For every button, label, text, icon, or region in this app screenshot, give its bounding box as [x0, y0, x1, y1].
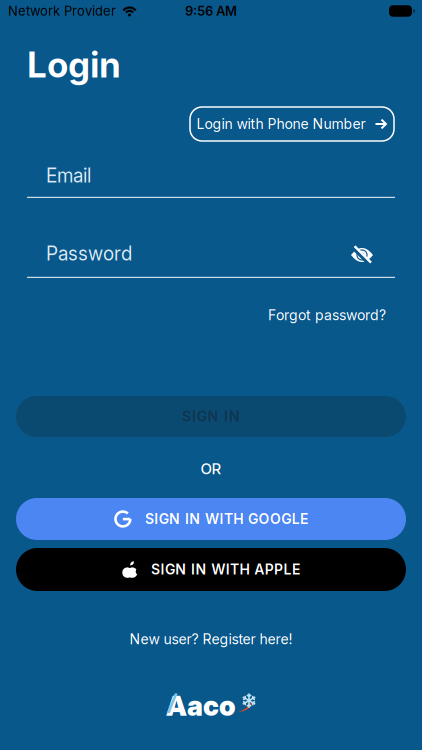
staticText: SIGN IN WITH APPLE [151, 561, 300, 578]
staticText: 9:56 AM [185, 3, 237, 19]
staticText: SIGN IN WITH GOOGLE [145, 511, 308, 527]
staticText: New user? Register here! [129, 631, 292, 647]
staticText: SIGN IN [182, 408, 240, 425]
staticText: Aaco [166, 690, 236, 722]
button[interactable]: SIGN IN WITH GOOGLE [16, 498, 406, 540]
staticText: OR [200, 460, 221, 478]
button[interactable]: SIGN IN WITH APPLE [16, 548, 406, 591]
staticText: Email [46, 164, 91, 187]
button[interactable]: Login with Phone Number [190, 107, 394, 141]
button[interactable]: New user? Register here! [129, 631, 292, 647]
staticText: Password [46, 242, 132, 265]
staticText: Network Provider [8, 3, 116, 19]
button[interactable]: Password [27, 242, 395, 278]
staticText: Forgot password? [268, 307, 386, 323]
staticText: Login [27, 44, 121, 85]
button[interactable]: Email [27, 164, 395, 198]
staticText: Login with Phone Number [196, 116, 365, 132]
button[interactable]: SIGN IN [16, 396, 406, 437]
button[interactable]: Forgot password? [268, 307, 386, 323]
button[interactable]: Show password [350, 243, 374, 267]
